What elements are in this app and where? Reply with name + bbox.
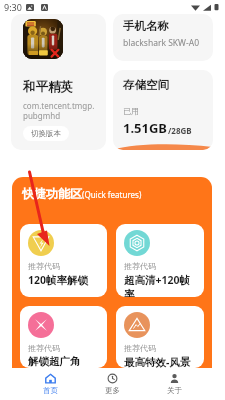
staticText: blackshark SKW-A0 (123, 37, 200, 49)
button[interactable]: 和平精英 (11, 14, 106, 150)
staticText: com.tencent.tmgp.pubgmhd (23, 100, 99, 121)
staticText: 手机名称 (123, 19, 169, 33)
staticText: 切换版本 (31, 129, 61, 138)
button[interactable]: 推荐代码 (20, 306, 107, 368)
staticText: 推荐代码 (28, 261, 60, 271)
button[interactable]: 手机名称 (113, 14, 213, 61)
staticText: 1.51GB (123, 119, 168, 137)
staticText: 和平精英 (23, 79, 73, 95)
staticText: 9:30 (4, 1, 22, 13)
staticText: 首页 (43, 386, 58, 395)
button[interactable]: 推荐代码 (116, 224, 204, 297)
button[interactable]: 更多 (81, 368, 143, 400)
staticText: 存储空间 (123, 78, 169, 92)
staticText: /28GB (168, 125, 192, 136)
staticText: 解锁超广角 (28, 355, 81, 368)
staticText: 超高清+120帧率 (124, 273, 195, 297)
staticText: 推荐代码 (124, 261, 156, 271)
staticText: (Quick features) (82, 189, 142, 200)
button[interactable]: 推荐代码 (20, 224, 107, 297)
button[interactable]: 关于 (143, 368, 205, 400)
staticText: 关于 (167, 386, 182, 395)
staticText: 120帧率解锁 (28, 273, 89, 287)
button[interactable]: 存储空间 (113, 70, 213, 150)
staticText: 已用 (123, 106, 139, 116)
staticText: 快捷功能区 (22, 186, 82, 201)
staticText: 更多 (105, 386, 120, 395)
button[interactable]: 首页 (20, 368, 81, 400)
staticText: 推荐代码 (28, 343, 60, 353)
button[interactable]: 推荐代码 (116, 306, 204, 368)
staticText: 推荐代码 (124, 343, 156, 353)
button[interactable]: 切换版本 (23, 126, 69, 141)
staticText: 最高特效-风景 (124, 355, 191, 368)
